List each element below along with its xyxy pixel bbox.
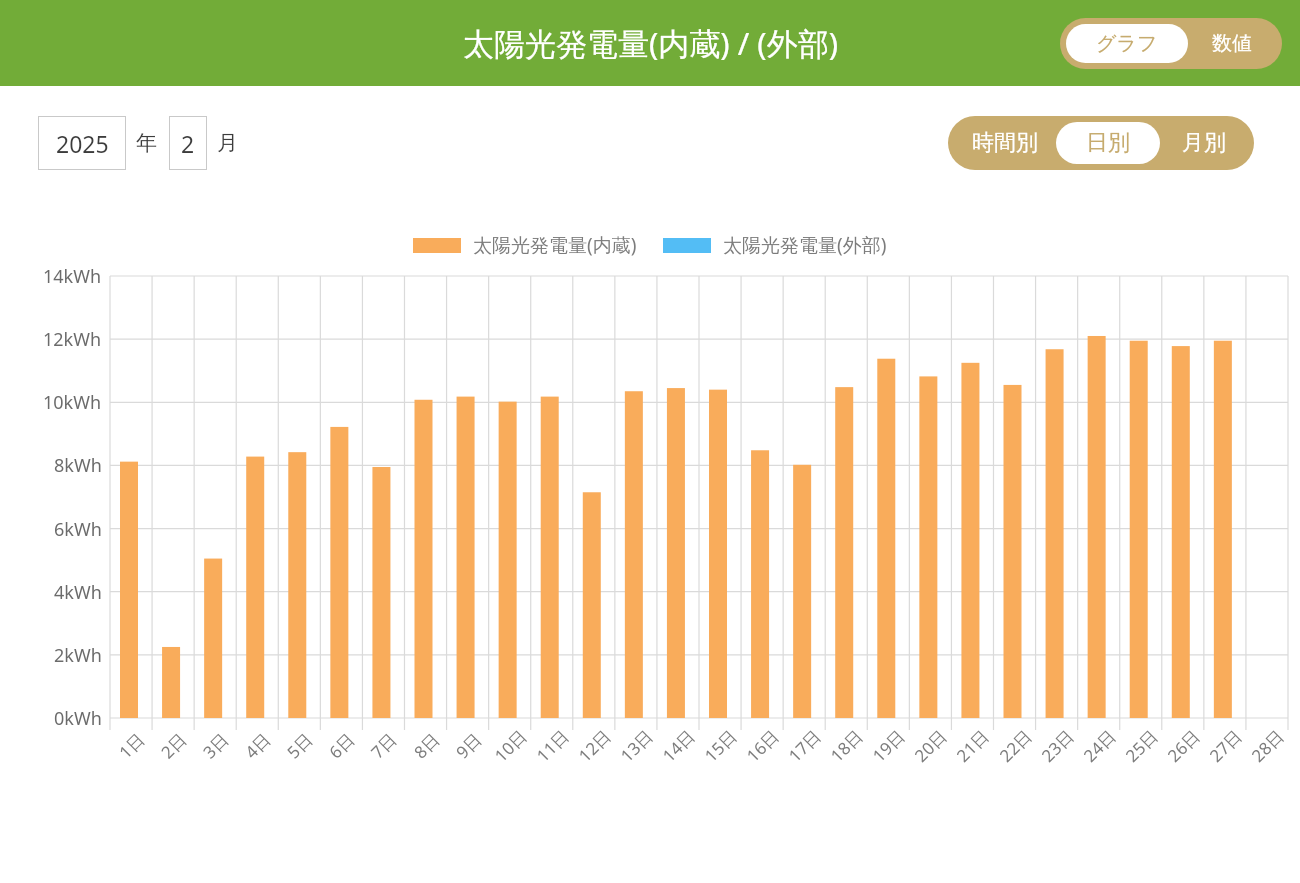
staticText: 数値	[1212, 31, 1252, 56]
staticText: 日別	[1086, 129, 1130, 157]
button[interactable]: 数値	[1188, 24, 1276, 63]
button[interactable]: グラフ	[1066, 24, 1188, 63]
staticText: 13日	[615, 724, 658, 767]
staticText: 3日	[198, 728, 233, 763]
staticText: 9日	[451, 728, 486, 763]
staticText: 17日	[783, 724, 826, 767]
button[interactable]: 月別	[1160, 122, 1248, 164]
staticText: 7日	[366, 728, 401, 763]
staticText: 12日	[573, 724, 616, 767]
staticText: 6日	[324, 728, 359, 763]
staticText: 10kWh	[43, 390, 102, 415]
staticText: 24日	[1078, 724, 1121, 767]
staticText: 20日	[909, 724, 952, 767]
staticText: 11日	[531, 724, 574, 767]
staticText: 27日	[1204, 724, 1247, 767]
staticText: 18日	[825, 724, 868, 767]
staticText: 年	[136, 130, 157, 156]
staticText: 太陽光発電量(内蔵) / (外部)	[463, 22, 838, 64]
staticText: 時間別	[972, 129, 1038, 157]
staticText: 26日	[1162, 724, 1205, 767]
staticText: 月別	[1182, 129, 1226, 157]
staticText: 14kWh	[43, 264, 102, 289]
staticText: 14日	[657, 724, 700, 767]
staticText: 5日	[282, 728, 317, 763]
staticText: 22日	[994, 724, 1037, 767]
staticText: 2	[181, 128, 195, 159]
staticText: 月	[217, 130, 238, 156]
staticText: 4日	[240, 728, 275, 763]
staticText: 2025	[56, 128, 109, 159]
staticText: 12kWh	[43, 327, 102, 352]
staticText: 28日	[1246, 724, 1289, 767]
staticText: 15日	[699, 724, 742, 767]
staticText: 4kWh	[54, 580, 102, 605]
staticText: 8kWh	[54, 453, 102, 478]
staticText: 1日	[114, 728, 149, 763]
staticText: 太陽光発電量(内蔵)	[473, 232, 637, 258]
staticText: 太陽光発電量(外部)	[723, 232, 887, 258]
staticText: 6kWh	[54, 517, 102, 542]
button[interactable]: 時間別	[954, 122, 1056, 164]
staticText: 23日	[1036, 724, 1079, 767]
button[interactable]: 2	[169, 116, 207, 170]
staticText: 2日	[156, 728, 191, 763]
staticText: 19日	[867, 724, 910, 767]
staticText: グラフ	[1096, 31, 1158, 56]
staticText: 10日	[489, 724, 532, 767]
staticText: 25日	[1120, 724, 1163, 767]
staticText: 8日	[409, 728, 444, 763]
staticText: 21日	[951, 724, 994, 767]
staticText: 2kWh	[54, 643, 102, 668]
staticText: 16日	[741, 724, 784, 767]
button[interactable]: 日別	[1056, 122, 1160, 164]
button[interactable]: 2025	[38, 116, 126, 170]
staticText: 0kWh	[54, 706, 102, 731]
